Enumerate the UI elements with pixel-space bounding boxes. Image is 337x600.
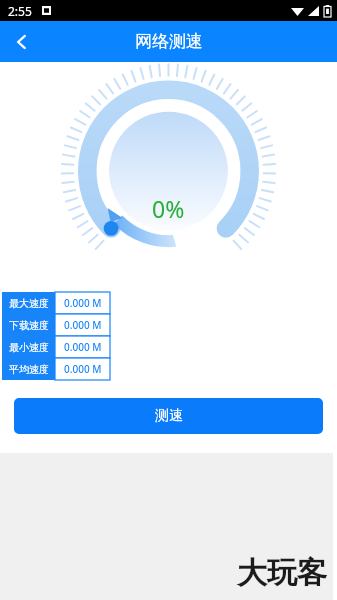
staticText: 测速 — [155, 407, 183, 425]
staticText: 网络测速 — [135, 31, 203, 52]
staticText: 0.000 M — [64, 296, 102, 310]
staticText: 大玩客 — [237, 554, 327, 592]
staticText: 最小速度 — [9, 341, 49, 354]
button[interactable]: 测速 — [14, 398, 323, 434]
staticText: 0.000 M — [64, 318, 102, 332]
staticText: 平均速度 — [9, 363, 49, 376]
staticText: 0.000 M — [64, 362, 102, 376]
staticText: 2:55 — [8, 3, 32, 19]
staticText: 最大速度 — [9, 297, 49, 310]
staticText: 0% — [152, 193, 185, 224]
staticText: 下载速度 — [9, 319, 49, 332]
button[interactable]: Back — [0, 21, 44, 62]
staticText: 0.000 M — [64, 340, 102, 354]
